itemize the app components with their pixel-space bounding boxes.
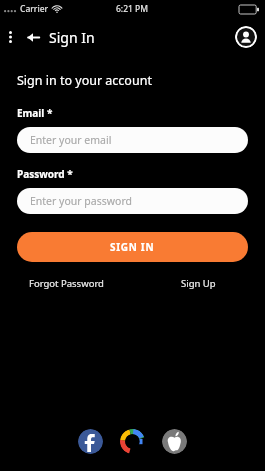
button[interactable]: Sign in with Facebook — [78, 429, 103, 454]
staticText: Email * — [17, 106, 53, 120]
staticText: Password * — [17, 167, 73, 181]
staticText: Sign in to your account — [17, 72, 152, 89]
button[interactable]: Enter your email — [17, 127, 248, 153]
staticText: 6:21 PM — [116, 3, 149, 15]
button[interactable]: Forgot Password — [25, 274, 108, 293]
button[interactable]: SIGN IN — [17, 232, 248, 262]
staticText: Sign Up — [181, 277, 216, 290]
button[interactable]: Sign in with Google — [120, 429, 145, 454]
staticText: Enter your password — [30, 194, 132, 208]
button[interactable]: Sign in with Apple — [162, 429, 187, 454]
staticText: Forgot Password — [29, 277, 104, 290]
button[interactable]: Sign Up — [177, 274, 220, 293]
staticText: Enter your email — [30, 133, 112, 147]
button[interactable]: More options — [0, 22, 20, 52]
button[interactable]: Enter your password — [17, 188, 248, 214]
button[interactable]: Back — [20, 22, 46, 52]
staticText: SIGN IN — [110, 240, 155, 254]
staticText: Carrier — [20, 3, 49, 15]
staticText: Sign In — [49, 28, 95, 47]
button[interactable]: Account — [235, 26, 257, 48]
